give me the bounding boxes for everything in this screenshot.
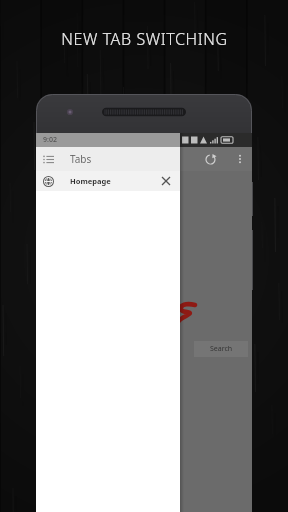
staticText: Search <box>210 344 233 354</box>
staticText: 9:02 <box>43 135 57 145</box>
button[interactable]: More options <box>228 147 252 171</box>
staticText: Homepage <box>70 176 111 186</box>
button[interactable]: Homepage <box>36 171 180 191</box>
staticText: NEW TAB SWITCHING <box>61 28 228 50</box>
button[interactable]: Close tab <box>156 171 176 191</box>
button[interactable]: Search <box>194 341 248 357</box>
button[interactable]: Reload <box>198 147 222 171</box>
staticText: Tabs <box>70 152 92 166</box>
button[interactable]: Menu <box>36 147 60 171</box>
